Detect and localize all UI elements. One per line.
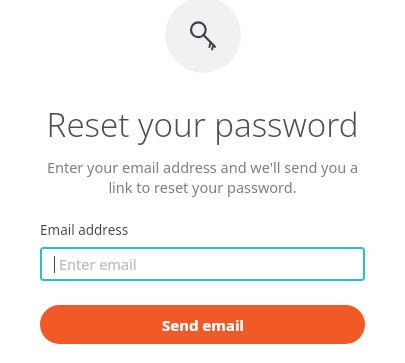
other: Reset password key: [188, 20, 218, 50]
staticText: Email address: [40, 221, 129, 239]
staticText: Send email: [162, 315, 244, 335]
button[interactable]: Enter email: [40, 247, 365, 281]
staticText: Enter your email address and we'll send …: [24, 157, 381, 197]
staticText: Enter email: [59, 254, 137, 274]
button[interactable]: Send email: [40, 305, 365, 344]
staticText: Reset your password: [0, 102, 405, 147]
